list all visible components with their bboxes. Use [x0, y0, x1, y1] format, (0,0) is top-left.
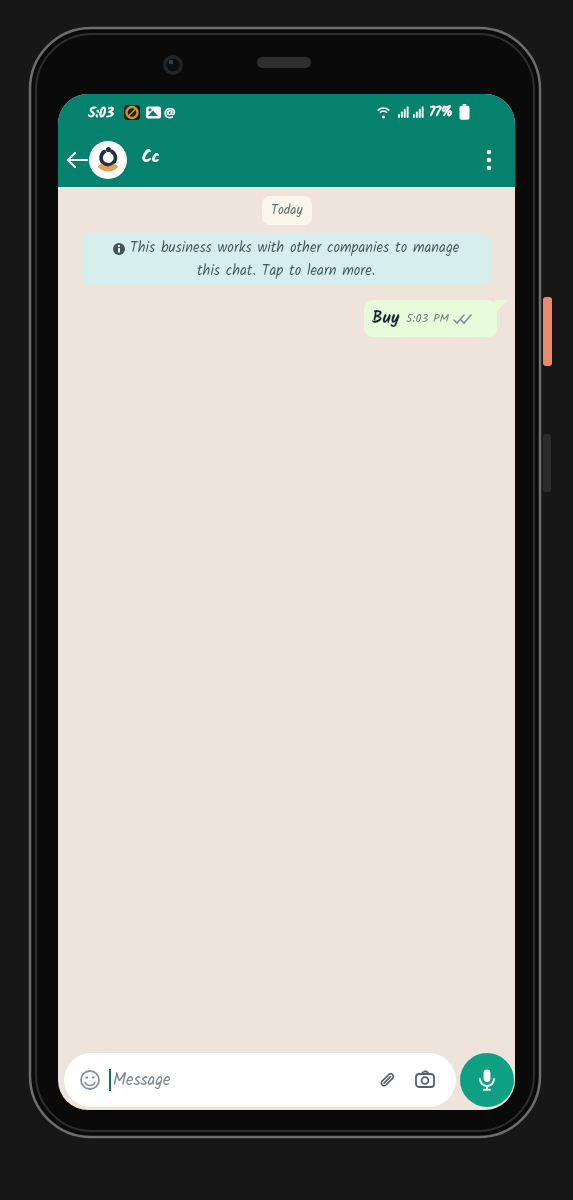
staticText: Buy [372, 305, 400, 332]
button[interactable]: Message [64, 1053, 456, 1107]
button[interactable] [89, 141, 127, 179]
button[interactable] [460, 1053, 514, 1107]
staticText: this chat. Tap to learn more. [197, 260, 376, 283]
staticText: 5:03 PM [406, 309, 450, 328]
staticText: Message [113, 1067, 171, 1093]
staticText: Today [271, 200, 303, 221]
button[interactable] [66, 147, 92, 173]
staticText: 5:03 [88, 102, 114, 124]
button[interactable]: Today [262, 196, 312, 225]
staticText: This business works with other companies… [130, 237, 460, 260]
staticText: Cc [142, 145, 160, 171]
button[interactable] [477, 148, 501, 172]
button[interactable]: This business works with other companies… [82, 233, 491, 286]
staticText: @ [164, 103, 176, 121]
staticText: 77% [429, 102, 453, 123]
